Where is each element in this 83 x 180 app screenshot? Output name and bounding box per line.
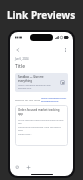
button[interactable]: https://example.com/preview/article [41,96,68,102]
button[interactable]: Add [25,164,31,170]
staticText: Order-focused market tracking app [18,108,65,116]
button[interactable]: Sandbox — Give me everything [15,73,68,92]
staticText: Jun 6, 2024 [15,57,29,61]
button[interactable]: Back [14,46,21,53]
staticText: Sandbox — Give me everything [18,75,57,83]
staticText: Title [15,63,25,70]
staticText: https://sandbox.example.com/preview-one [18,84,57,90]
staticText: Link Previews [7,8,76,22]
staticText: community positioned. Find the world bes… [18,125,65,131]
button[interactable]: Order-focused market tracking app [15,105,68,146]
button[interactable]: Dismiss [60,80,65,85]
button[interactable]: More options [62,46,69,53]
button[interactable]: Attach [14,164,20,170]
staticText: Is the market index tracking sales acros… [18,118,65,124]
staticText: Reports for this thing [15,98,41,101]
staticText: https://example.com/preview/article [41,96,68,102]
staticText: trade tools… [18,132,32,135]
